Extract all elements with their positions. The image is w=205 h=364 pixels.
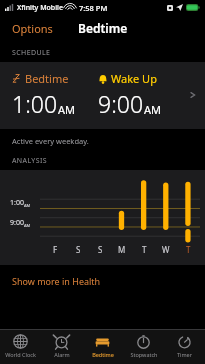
staticText: Wake Up [111,71,157,86]
staticText: Alarm [54,351,70,358]
other: Alarm [54,334,69,349]
staticText: AM [24,223,31,228]
staticText: 1:00 [10,198,24,208]
staticText: Bedtime [78,20,128,36]
staticText: AM [24,203,31,208]
button[interactable]: Bedtime [82,330,123,364]
staticText: Stopwatch [130,351,158,358]
staticText: Show more in Health [12,275,101,287]
button[interactable]: Stopwatch [123,330,164,364]
button[interactable]: Alarm [41,330,82,364]
staticText: W [162,244,170,255]
other: World Clock [13,334,28,349]
staticText: Timer [177,351,192,358]
staticText: World Clock [5,351,36,358]
staticText: M [118,244,126,255]
other: Edit schedule [189,89,197,101]
staticText: AM [58,102,76,117]
staticText: 9:00 [10,218,24,228]
staticText: Xfinity Mobile [17,3,63,13]
other: Bedtime [95,334,110,349]
button[interactable]: Timer [164,330,205,364]
other: Timer [177,334,192,349]
staticText: T [142,244,147,255]
staticText: AM [144,102,162,117]
staticText: S [76,244,81,255]
staticText: F [53,244,58,255]
staticText: 9:00 [98,88,144,119]
other: Stopwatch [136,334,151,349]
staticText: Bedtime [92,351,114,358]
button[interactable]: World Clock [0,330,41,364]
staticText: 7:58 PM [79,3,108,13]
staticText: ANALYSIS [12,156,47,166]
staticText: S [98,244,103,255]
staticText: 1:00 [12,88,58,119]
staticText: SCHEDULE [12,48,51,58]
button[interactable]: Options [0,17,61,40]
button[interactable]: Bedtime [0,62,205,129]
staticText: Options [12,21,53,36]
staticText: Bedtime [25,71,69,86]
staticText: T [186,244,191,255]
button[interactable]: Show more in Health [0,273,205,291]
staticText: Active every weekday. [12,136,89,146]
